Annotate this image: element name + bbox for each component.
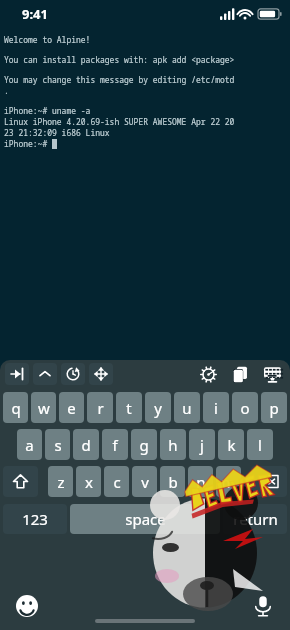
staticText: p [269, 398, 279, 418]
staticText: i [214, 398, 218, 418]
staticText: l [258, 435, 262, 455]
button[interactable]: p [261, 392, 287, 423]
button[interactable]: Shift [3, 466, 38, 497]
staticText: 123 [22, 509, 48, 529]
button[interactable]: l [247, 429, 273, 460]
staticText: e [67, 398, 76, 418]
button[interactable]: v [132, 466, 157, 497]
button[interactable]: f [102, 429, 128, 460]
staticText: return [233, 509, 278, 529]
staticText: n [196, 472, 206, 492]
button[interactable]: Settings [197, 363, 219, 385]
button[interactable]: x [76, 466, 101, 497]
button[interactable]: Backspace [251, 466, 287, 497]
staticText: c [113, 472, 121, 492]
button[interactable]: s [45, 429, 70, 460]
staticText: 9:41 [22, 5, 48, 23]
staticText: . [4, 85, 9, 96]
button[interactable]: e [59, 392, 84, 423]
staticText: u [182, 398, 192, 418]
button[interactable]: w [31, 392, 56, 423]
button[interactable]: t [116, 392, 142, 423]
staticText: iPhone:~# [4, 138, 52, 149]
staticText: 23 21:32:09 i686 Linux [4, 127, 110, 138]
button[interactable]: Dictation [250, 593, 276, 619]
staticText: w [38, 398, 50, 418]
button[interactable]: History [61, 363, 85, 385]
button[interactable]: 123 [3, 504, 67, 534]
staticText: q [11, 398, 21, 418]
button[interactable]: j [189, 429, 215, 460]
staticText: You may change this message by editing /… [4, 74, 235, 85]
staticText: Linux iPhone 4.20.69-ish SUPER AWESOME A… [4, 116, 235, 127]
staticText: z [57, 472, 65, 492]
button[interactable]: return [223, 504, 287, 534]
staticText: v [141, 472, 149, 492]
button[interactable]: d [73, 429, 99, 460]
button[interactable]: q [3, 392, 28, 423]
button[interactable]: Hide keyboard [261, 363, 283, 385]
button[interactable]: a [17, 429, 42, 460]
button[interactable]: b [160, 466, 185, 497]
button[interactable]: y [145, 392, 171, 423]
button[interactable]: Tab [5, 363, 29, 385]
staticText: space [125, 509, 166, 529]
staticText: a [25, 435, 34, 455]
button[interactable]: h [160, 429, 186, 460]
staticText: t [126, 398, 132, 418]
button[interactable]: o [232, 392, 258, 423]
staticText: iPhone:~# uname -a [4, 105, 91, 116]
button[interactable]: Paste [229, 363, 251, 385]
button[interactable]: Emoji [14, 593, 40, 619]
staticText: r [97, 398, 104, 418]
button[interactable]: i [203, 392, 229, 423]
staticText: k [227, 435, 236, 455]
staticText: j [200, 435, 204, 455]
staticText: m [221, 472, 236, 492]
button[interactable]: Move cursor [89, 363, 113, 385]
button[interactable]: k [218, 429, 244, 460]
button[interactable]: c [104, 466, 129, 497]
staticText: You can install packages with: apk add <… [4, 54, 235, 65]
staticText: o [240, 398, 250, 418]
staticText: f [112, 435, 118, 455]
button[interactable]: Control [33, 363, 57, 385]
staticText: d [81, 435, 91, 455]
staticText: s [54, 435, 62, 455]
staticText: Welcome to Alpine! [4, 34, 91, 45]
button[interactable]: u [174, 392, 200, 423]
button[interactable]: n [188, 466, 213, 497]
staticText: h [168, 435, 178, 455]
staticText: b [168, 472, 178, 492]
staticText: x [85, 472, 93, 492]
staticText: g [139, 435, 149, 455]
button[interactable]: space [70, 504, 220, 534]
button[interactable]: z [48, 466, 73, 497]
button[interactable]: g [131, 429, 157, 460]
button[interactable]: r [87, 392, 113, 423]
staticText: y [154, 398, 162, 418]
button[interactable]: m [216, 466, 241, 497]
